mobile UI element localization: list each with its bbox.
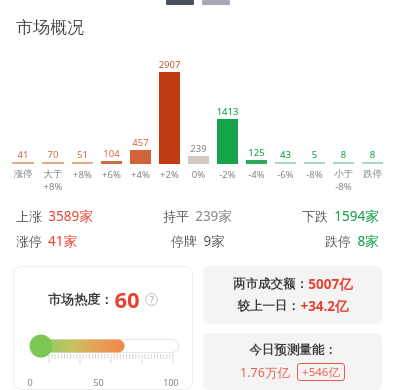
staticText: 8 <box>358 148 387 161</box>
button[interactable]: 125 <box>242 146 271 164</box>
staticText: -2% <box>213 168 242 181</box>
button[interactable]: 43 <box>271 148 300 164</box>
button[interactable]: 涨停 <box>16 232 137 250</box>
button[interactable]: 8 <box>358 148 387 164</box>
staticText: -4% <box>242 168 271 181</box>
button[interactable]: 1413 <box>213 105 242 164</box>
button[interactable]: 两市成交额： <box>203 266 382 324</box>
staticText: +546亿 <box>302 364 340 380</box>
button[interactable]: 41 <box>8 148 38 164</box>
staticText: 1.76万亿 <box>240 364 290 381</box>
staticText: 涨停 <box>16 233 42 249</box>
staticText: 8 <box>329 148 358 161</box>
staticText: 3589家 <box>48 207 93 225</box>
staticText: 0 <box>27 376 33 388</box>
button[interactable]: 5 <box>300 148 329 164</box>
staticText: 41 <box>8 148 38 161</box>
staticText: 70 <box>38 148 68 161</box>
staticText: 41家 <box>48 232 77 250</box>
staticText: 9家 <box>203 232 225 250</box>
button[interactable]: 下跌 <box>258 207 379 225</box>
staticText: 较上一日： <box>237 298 300 314</box>
staticText: 上涨 <box>16 208 42 224</box>
button[interactable]: 239 <box>184 142 213 164</box>
staticText: 下跌 <box>302 208 328 224</box>
staticText: +6% <box>97 168 126 181</box>
staticText: 0% <box>184 168 213 181</box>
staticText: +34.2亿 <box>300 297 349 315</box>
staticText: +8% <box>68 168 97 181</box>
button[interactable]: 上涨 <box>16 207 137 225</box>
staticText: 停牌 <box>171 233 197 249</box>
button[interactable]: 帮助 <box>145 293 158 306</box>
staticText: 市场热度： <box>48 291 113 307</box>
staticText: 60 <box>114 284 140 314</box>
staticText: -6% <box>271 168 300 181</box>
button[interactable]: 停牌 <box>137 232 258 250</box>
button[interactable]: 51 <box>68 148 97 164</box>
staticText: 125 <box>242 146 271 159</box>
staticText: 小于 <box>329 168 358 180</box>
button[interactable]: 持平 <box>137 207 258 225</box>
staticText: 100 <box>163 376 179 388</box>
button[interactable]: 70 <box>38 148 68 164</box>
button[interactable]: 457 <box>126 136 155 164</box>
staticText: 50 <box>93 376 104 388</box>
staticText: 8家 <box>357 232 379 250</box>
staticText: 1594家 <box>334 207 379 225</box>
staticText: 2907 <box>155 58 184 71</box>
button[interactable]: 104 <box>97 147 126 164</box>
staticText: +2% <box>155 168 184 181</box>
staticText: +8% <box>38 180 68 193</box>
staticText: 51 <box>68 148 97 161</box>
button[interactable]: 2907 <box>155 58 184 164</box>
button[interactable]: 今日预测量能： <box>203 333 382 390</box>
button[interactable]: 市场热度： <box>13 266 193 390</box>
button[interactable]: 跌停 <box>258 232 379 250</box>
staticText: 1413 <box>213 105 242 118</box>
staticText: 市场概况 <box>16 17 84 38</box>
staticText: 5 <box>300 148 329 161</box>
staticText: -8% <box>329 180 358 193</box>
staticText: 持平 <box>163 208 189 224</box>
button[interactable]: 8 <box>329 148 358 164</box>
staticText: 涨停 <box>8 168 38 180</box>
staticText: 两市成交额： <box>233 276 308 292</box>
staticText: 跌停 <box>325 233 351 249</box>
staticText: 跌停 <box>358 168 387 180</box>
staticText: 5007亿 <box>308 275 353 293</box>
staticText: 43 <box>271 148 300 161</box>
staticText: +4% <box>126 168 155 181</box>
staticText: -8% <box>300 168 329 181</box>
staticText: 457 <box>126 136 155 149</box>
staticText: 239 <box>184 142 213 155</box>
staticText: 今日预测量能： <box>249 342 337 358</box>
staticText: ? <box>150 294 154 305</box>
staticText: 104 <box>97 147 126 160</box>
staticText: 239家 <box>195 207 232 225</box>
staticText: 大于 <box>38 168 68 180</box>
